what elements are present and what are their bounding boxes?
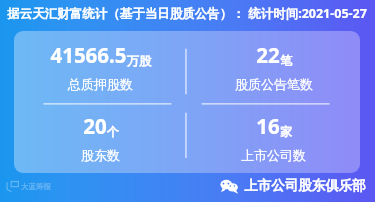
staticText: 16 [256,112,280,140]
staticText: 总质押股数 [68,76,133,92]
staticText: 家 [280,124,292,139]
staticText: 股质公告笔数 [235,76,313,92]
staticText: 个 [107,124,119,139]
staticText: 22 [256,41,280,69]
staticText: 股东数 [81,147,120,163]
button[interactable]: 16 [187,102,360,173]
staticText: 万股 [127,53,151,68]
button[interactable]: 20 [14,102,187,173]
button[interactable]: 41566.5 [14,31,360,173]
staticText: 大蓝筹报 [21,182,51,191]
staticText: 20 [83,112,107,140]
staticText: 笔 [280,53,292,68]
button[interactable]: WeChat [220,176,366,195]
other: WeChat [220,176,239,195]
staticText: 41566.5 [50,41,127,69]
button[interactable]: 41566.5 [14,31,187,102]
staticText: 上市公司股东俱乐部 [244,177,366,194]
staticText: 上市公司数 [241,147,306,163]
staticText: 据云天汇财富统计（基于当日股质公告）： [7,6,245,22]
button[interactable]: 22 [187,31,360,102]
staticText: 统计时间:2021-05-27 [248,5,367,22]
